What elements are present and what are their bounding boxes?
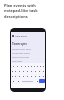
staticText: Demo prep notes bbox=[12, 56, 30, 59]
button[interactable] bbox=[25, 74, 29, 78]
button[interactable] bbox=[14, 69, 17, 73]
button[interactable] bbox=[25, 69, 29, 73]
button[interactable] bbox=[17, 69, 21, 73]
button[interactable] bbox=[41, 74, 45, 78]
button[interactable] bbox=[19, 64, 23, 68]
button[interactable] bbox=[16, 79, 20, 83]
button[interactable] bbox=[37, 74, 41, 78]
button[interactable] bbox=[42, 64, 45, 68]
button[interactable] bbox=[15, 64, 19, 68]
button[interactable]: Close bbox=[12, 32, 44, 39]
button[interactable] bbox=[33, 74, 37, 78]
button[interactable] bbox=[37, 69, 41, 73]
button[interactable] bbox=[11, 79, 16, 83]
staticText: Next steps bbox=[12, 60, 23, 63]
button[interactable] bbox=[29, 69, 33, 73]
button[interactable] bbox=[39, 79, 45, 83]
button[interactable] bbox=[33, 69, 37, 73]
button[interactable] bbox=[11, 69, 14, 73]
button[interactable] bbox=[29, 74, 33, 78]
button[interactable] bbox=[11, 74, 14, 78]
button[interactable] bbox=[30, 64, 33, 68]
button[interactable] bbox=[21, 69, 25, 73]
button[interactable] bbox=[20, 79, 35, 83]
button[interactable] bbox=[41, 69, 45, 73]
button[interactable] bbox=[17, 74, 21, 78]
button[interactable] bbox=[27, 64, 30, 68]
button[interactable] bbox=[35, 79, 39, 83]
button[interactable] bbox=[14, 74, 17, 78]
button[interactable] bbox=[21, 74, 25, 78]
button[interactable] bbox=[36, 64, 39, 68]
staticText: New event bbox=[15, 34, 28, 37]
button[interactable] bbox=[33, 64, 36, 68]
staticText: Assign new tickets bbox=[12, 52, 30, 55]
staticText: Plan events with notepad-like task descr… bbox=[4, 3, 40, 20]
staticText: Review sprint goals bbox=[12, 48, 31, 51]
button[interactable] bbox=[23, 64, 27, 68]
button[interactable] bbox=[39, 64, 42, 68]
button[interactable] bbox=[11, 64, 15, 68]
staticText: Team sync bbox=[12, 42, 27, 46]
